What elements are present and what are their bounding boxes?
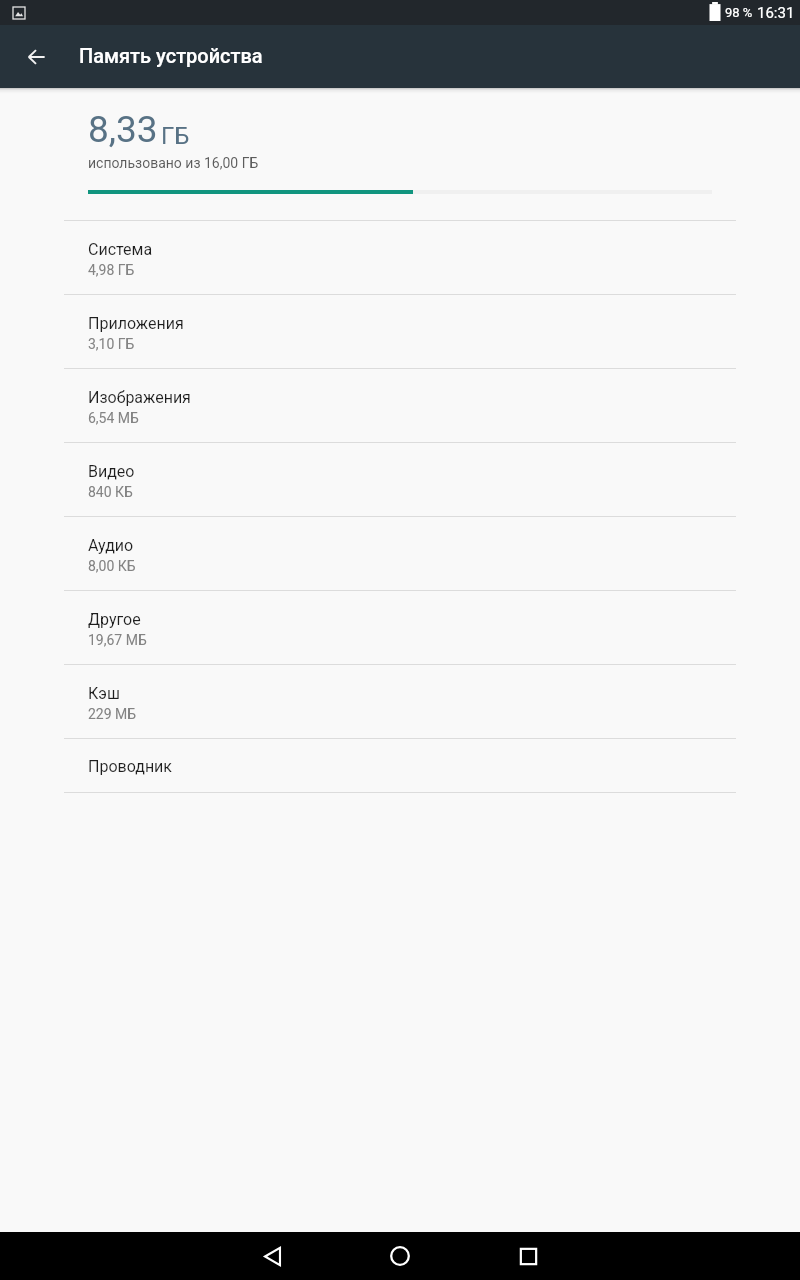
- button[interactable]: Проводник: [0, 738, 800, 792]
- staticText: использовано из 16,00 ГБ: [88, 155, 259, 171]
- other: Image notification: [13, 7, 25, 19]
- staticText: Проводник: [88, 757, 172, 776]
- button[interactable]: Home: [364, 1232, 436, 1280]
- button[interactable]: Другое: [0, 590, 800, 664]
- button[interactable]: Recent apps: [492, 1232, 564, 1280]
- button[interactable]: Приложения: [0, 294, 800, 368]
- staticText: 4,98 ГБ: [88, 262, 135, 278]
- button[interactable]: Кэш: [0, 664, 800, 738]
- staticText: Видео: [88, 462, 135, 481]
- staticText: 8,33: [88, 108, 158, 151]
- button[interactable]: Система: [0, 220, 800, 294]
- staticText: ГБ: [161, 122, 190, 150]
- button[interactable]: Аудио: [0, 516, 800, 590]
- button[interactable]: Видео: [0, 442, 800, 516]
- staticText: Система: [88, 240, 153, 259]
- staticText: Аудио: [88, 536, 134, 555]
- staticText: 8,00 КБ: [88, 558, 136, 574]
- staticText: 229 МБ: [88, 706, 137, 722]
- staticText: Память устройства: [79, 44, 263, 67]
- button[interactable]: Back: [0, 25, 72, 88]
- staticText: 16:31: [757, 4, 795, 22]
- button[interactable]: Back: [236, 1232, 308, 1280]
- staticText: Изображения: [88, 388, 191, 407]
- staticText: Кэш: [88, 684, 120, 703]
- staticText: 3,10 ГБ: [88, 336, 135, 352]
- staticText: Другое: [88, 610, 141, 629]
- staticText: 19,67 МБ: [88, 632, 147, 648]
- staticText: 6,54 МБ: [88, 410, 139, 426]
- button[interactable]: Изображения: [0, 368, 800, 442]
- staticText: 98 %: [725, 5, 753, 20]
- other: Battery full: [709, 2, 721, 21]
- staticText: Приложения: [88, 314, 184, 333]
- staticText: 840 КБ: [88, 484, 133, 500]
